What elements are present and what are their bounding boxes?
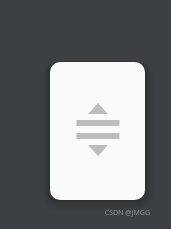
staticText: CSDN @JMGG <box>104 208 150 218</box>
button[interactable]: Adjust value up or down <box>50 62 145 200</box>
